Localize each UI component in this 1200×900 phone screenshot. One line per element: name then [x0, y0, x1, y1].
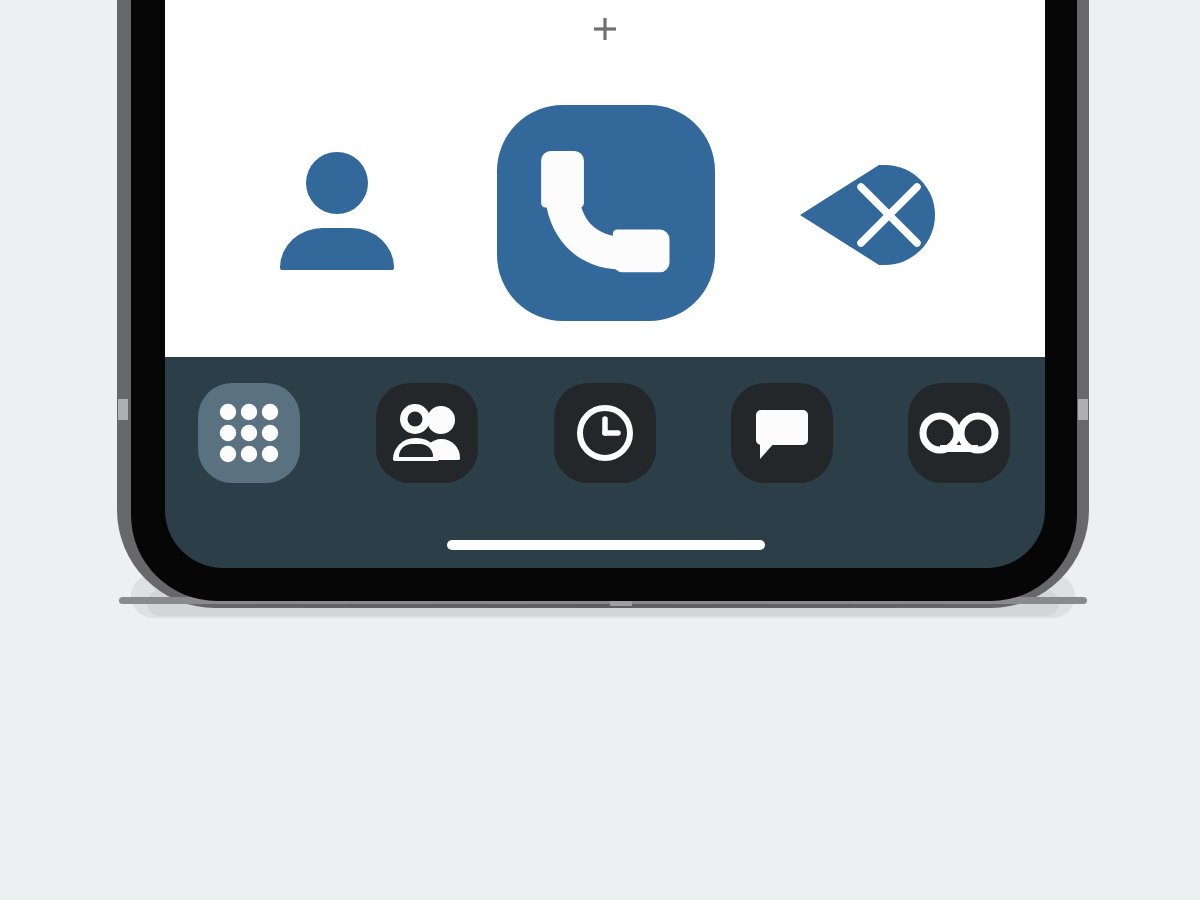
- button[interactable]: Keypad: [198, 383, 300, 483]
- button[interactable]: Call: [497, 105, 715, 321]
- button[interactable]: Recents: [554, 383, 656, 483]
- button[interactable]: Backspace: [798, 158, 940, 270]
- button[interactable]: Add to contacts: [275, 148, 400, 273]
- button[interactable]: Voicemail: [908, 383, 1010, 483]
- button[interactable]: Contacts: [376, 383, 478, 483]
- button[interactable]: Add contact: [582, 6, 628, 52]
- button[interactable]: Messages: [731, 383, 833, 483]
